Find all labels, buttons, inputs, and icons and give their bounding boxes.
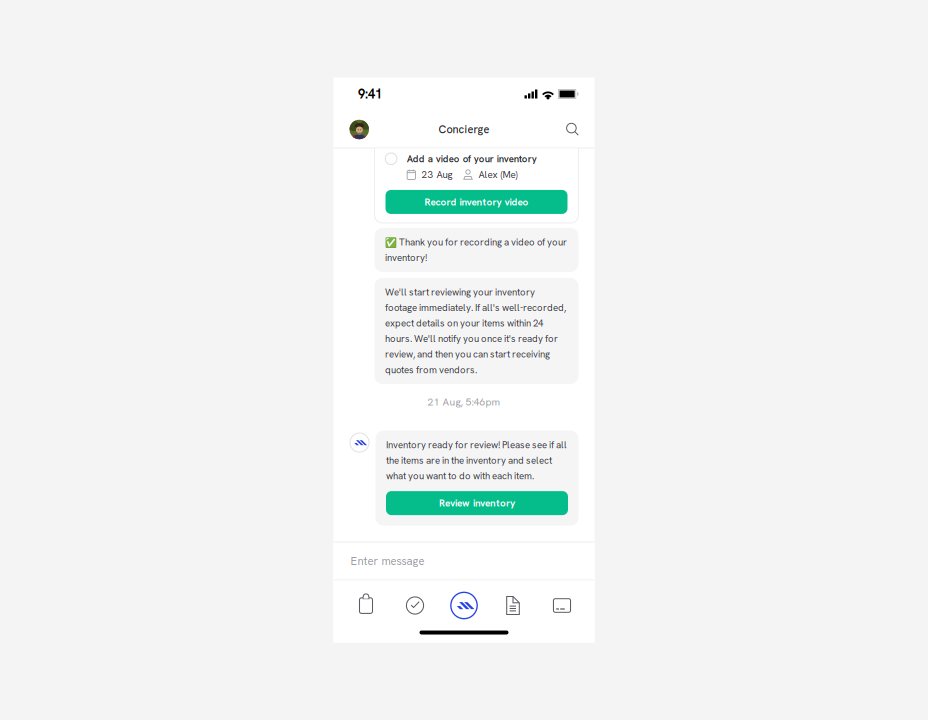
- staticText: Review inventory: [439, 497, 515, 510]
- button[interactable]: Record inventory video: [385, 190, 567, 214]
- staticText: Inventory ready for review! Please see i…: [386, 439, 567, 482]
- staticText: We'll start reviewing your inventory foo…: [385, 286, 566, 376]
- button[interactable]: Concierge: [439, 591, 488, 619]
- staticText: 21 Aug, 5:46pm: [427, 395, 500, 409]
- button[interactable]: Search: [565, 122, 579, 136]
- button[interactable]: Tasks: [341, 591, 390, 619]
- button[interactable]: Enter message: [333, 541, 594, 580]
- button[interactable]: Payments: [537, 591, 586, 619]
- staticText: Enter message: [350, 554, 424, 568]
- staticText: 9:41: [358, 86, 382, 102]
- button[interactable]: Review inventory: [386, 491, 568, 515]
- staticText: Concierge: [438, 122, 489, 137]
- staticText: 23 Aug: [421, 168, 452, 181]
- button[interactable]: Documents: [488, 591, 537, 619]
- staticText: Alex (Me): [479, 168, 518, 181]
- staticText: ✅ Thank you for recording a video of you…: [385, 236, 567, 264]
- button[interactable]: Approvals: [390, 591, 439, 619]
- staticText: Record inventory video: [424, 195, 528, 208]
- button[interactable]: Profile: [349, 120, 369, 139]
- staticText: Add a video of your inventory: [407, 152, 537, 165]
